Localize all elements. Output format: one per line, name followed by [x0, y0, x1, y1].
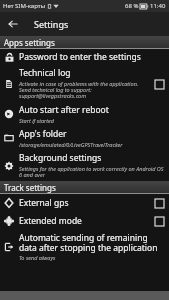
staticText: Нет SIM-карты — [3, 2, 46, 10]
button[interactable]: Toggle External gps — [152, 196, 166, 210]
staticText: Track settings — [4, 182, 56, 193]
button[interactable]: Background settings — [0, 150, 169, 181]
staticText: 11:40 — [150, 2, 166, 10]
staticText: App's folder — [19, 128, 67, 140]
button[interactable]: App's folder — [0, 126, 169, 150]
staticText: External gps — [19, 197, 69, 209]
staticText: Background settings — [19, 152, 102, 164]
button[interactable]: Automatic sending of remaining data afte… — [0, 230, 169, 263]
staticText: Activate in case of problems with the ap… — [19, 80, 149, 100]
staticText: To send always — [19, 254, 56, 261]
staticText: Auto start after reboot — [19, 104, 109, 116]
staticText: Apps settings — [4, 37, 55, 48]
staticText: Settings for the application to work cor… — [19, 165, 166, 179]
button[interactable]: Technical log — [0, 65, 169, 102]
staticText: Password to enter the settings — [19, 51, 141, 63]
staticText: 68 % — [125, 2, 139, 10]
button[interactable]: Auto start after reboot — [0, 102, 169, 126]
button[interactable]: Toggle Extended mode — [152, 214, 166, 228]
button[interactable]: Extended mode — [0, 212, 169, 230]
staticText: Settings — [34, 18, 69, 30]
staticText: Start if started — [19, 117, 55, 124]
button[interactable]: Toggle Technical log — [152, 77, 166, 91]
staticText: Automatic sending of remaining data afte… — [19, 232, 166, 253]
staticText: /storage/emulated/0/LiveGPSTravelTracker — [19, 141, 123, 148]
staticText: Extended mode — [19, 215, 82, 227]
button[interactable]: Back — [5, 16, 21, 32]
button[interactable]: External gps — [0, 194, 169, 212]
button[interactable]: Password to enter the settings — [0, 49, 169, 65]
staticText: Technical log — [19, 67, 71, 79]
